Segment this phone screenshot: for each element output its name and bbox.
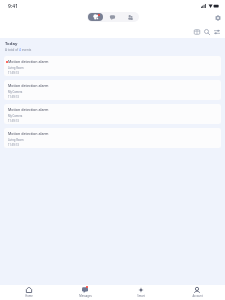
button[interactable]: Motion detection alarm [4,80,221,100]
button[interactable]: Motion detection alarm [4,56,221,76]
staticText: A total of [5,48,19,52]
button[interactable]: Motion detection alarm [4,104,221,124]
staticText: Living Room [8,138,24,142]
button[interactable]: Alerts [88,13,103,21]
button[interactable]: Messages [104,12,121,22]
staticText: 9:41 [8,3,18,10]
staticText: events [21,48,32,52]
button[interactable]: Motion detection alarm [4,128,221,148]
staticText: Living Room [8,66,24,70]
staticText: My Camera [8,114,23,118]
staticText: My Camera [8,90,23,94]
staticText: 11:39:13 [8,119,19,123]
button[interactable]: Gallery [192,27,202,37]
button[interactable]: Filter [212,27,222,37]
staticText: 11:39:13 [8,143,19,147]
staticText: Smart [137,294,145,298]
staticText: Motion detection alarm [8,59,49,64]
button[interactable]: Home [0,285,57,300]
button[interactable]: Smart [113,285,169,300]
staticText: Messages [79,294,92,298]
staticText: Today [5,41,18,47]
button[interactable]: Family [121,12,139,22]
staticText: Home [25,294,33,298]
button[interactable]: Search [202,27,212,37]
button[interactable]: Settings [212,12,223,23]
staticText: Account [192,294,203,298]
staticText: Motion detection alarm [8,83,49,88]
staticText: 11:39:13 [8,95,19,99]
staticText: Motion detection alarm [8,131,49,136]
staticText: 11:39:13 [8,71,19,75]
button[interactable]: Account [169,285,225,300]
button[interactable]: Messages [57,285,113,300]
staticText: Motion detection alarm [8,107,49,112]
staticText: 4 [19,48,21,52]
